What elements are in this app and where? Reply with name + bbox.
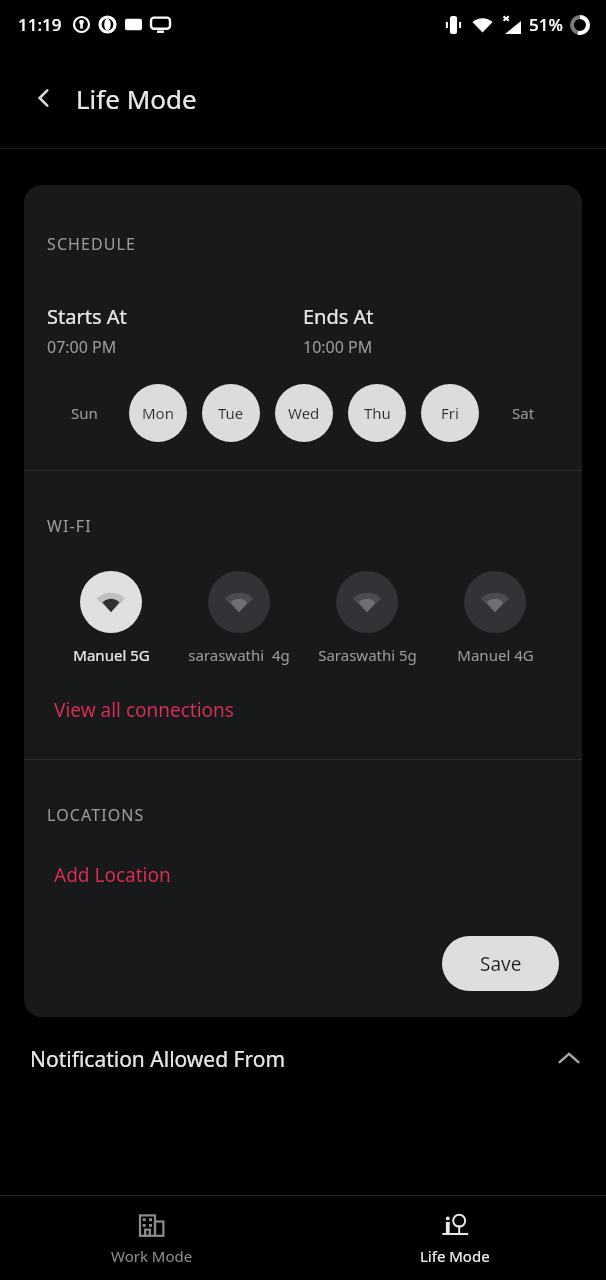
staticText: Work Mode: [111, 1246, 193, 1266]
staticText: SCHEDULE: [47, 233, 137, 255]
button[interactable]: Manuel 4G: [431, 571, 559, 665]
staticText: Ends At: [303, 303, 374, 330]
staticText: Manuel 5G: [73, 645, 150, 665]
staticText: Starts At: [47, 303, 127, 330]
button[interactable]: Thu: [348, 384, 406, 442]
button[interactable]: Back: [22, 76, 66, 120]
button[interactable]: saraswathi 4g: [175, 571, 303, 665]
button[interactable]: Save: [442, 936, 559, 991]
staticText: View all connections: [54, 697, 234, 723]
staticText: Save: [480, 951, 522, 977]
staticText: 10:00 PM: [303, 336, 373, 358]
staticText: 07:00 PM: [47, 336, 117, 358]
staticText: saraswathi 4g: [188, 645, 290, 665]
staticText: Life Mode: [420, 1246, 490, 1266]
button[interactable]: Wed: [275, 384, 333, 442]
staticText: Fri: [441, 403, 459, 423]
staticText: Sun: [71, 403, 98, 423]
button[interactable]: Notification Allowed From: [0, 1036, 606, 1082]
button[interactable]: View all connections: [47, 693, 241, 727]
button[interactable]: Mon: [129, 384, 187, 442]
staticText: Thu: [364, 403, 391, 423]
button[interactable]: Work Mode: [0, 1196, 303, 1280]
staticText: Manuel 4G: [457, 645, 534, 665]
button[interactable]: Sat: [494, 384, 552, 442]
staticText: Notification Allowed From: [30, 1045, 286, 1074]
button[interactable]: Saraswathi 5g: [303, 571, 431, 665]
staticText: 11:19: [18, 13, 62, 36]
button[interactable]: Life Mode: [303, 1196, 606, 1280]
button[interactable]: Tue: [202, 384, 260, 442]
staticText: Tue: [218, 403, 244, 423]
staticText: Add Location: [54, 862, 171, 888]
button[interactable]: Add Location: [47, 858, 178, 892]
staticText: WI-FI: [47, 515, 92, 537]
button[interactable]: Fri: [421, 384, 479, 442]
staticText: Wed: [288, 403, 320, 423]
staticText: LOCATIONS: [47, 804, 145, 826]
staticText: Life Mode: [76, 81, 197, 116]
staticText: Mon: [142, 403, 174, 423]
staticText: 51%: [529, 13, 563, 36]
button[interactable]: Manuel 5G: [47, 571, 175, 665]
button[interactable]: Sun: [55, 384, 113, 442]
staticText: Saraswathi 5g: [318, 645, 417, 665]
staticText: Sat: [512, 403, 535, 423]
